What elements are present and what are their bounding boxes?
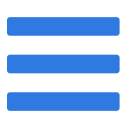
button[interactable]: Second item xyxy=(7,55,120,73)
button[interactable]: Third item xyxy=(7,92,120,111)
button[interactable]: First item xyxy=(7,17,120,36)
